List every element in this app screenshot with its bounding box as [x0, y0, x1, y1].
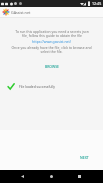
staticText: 12:45	[92, 1, 102, 6]
button[interactable]: Home	[37, 170, 66, 183]
staticText: BROWSE	[45, 64, 59, 69]
button[interactable]: Recent apps	[65, 170, 94, 183]
button[interactable]: NEXT	[77, 153, 92, 162]
staticText: File loaded successfully	[19, 84, 55, 88]
staticText: Once you already have the file, click to…	[11, 45, 92, 54]
staticText: GAssist.net	[11, 10, 31, 15]
staticText: NEXT	[80, 155, 89, 160]
button[interactable]: Back	[8, 170, 37, 183]
button[interactable]: BROWSE	[41, 62, 63, 71]
staticText: https://www.gassist.net/	[32, 39, 71, 44]
staticText: To run this application you need a secre…	[15, 29, 89, 38]
